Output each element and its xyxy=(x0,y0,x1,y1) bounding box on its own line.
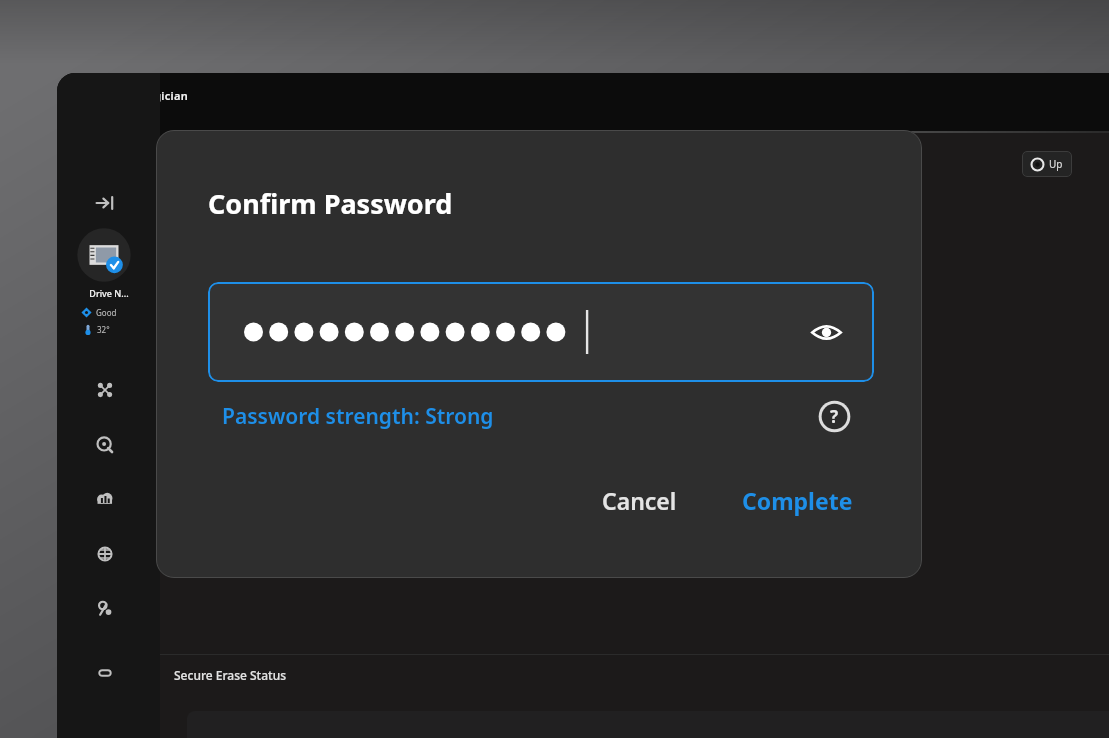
button[interactable]: Data security xyxy=(85,534,125,574)
staticText: Complete xyxy=(742,485,853,516)
button[interactable]: Up xyxy=(1022,151,1072,177)
staticText: 32° xyxy=(97,324,110,335)
staticText: Cancel xyxy=(602,485,677,516)
staticText: Password strength: Strong xyxy=(222,402,494,431)
staticText: Good xyxy=(96,307,117,318)
button[interactable]: Cancel xyxy=(586,477,693,524)
button[interactable]: Performance xyxy=(85,370,125,410)
button[interactable]: Expand menu xyxy=(85,183,125,223)
staticText: Secure Erase Status xyxy=(174,667,286,683)
button[interactable]: Show password xyxy=(806,312,846,352)
button[interactable]: Settings xyxy=(85,653,125,693)
staticText: Up xyxy=(1049,157,1063,171)
staticText: Drive N... xyxy=(76,287,142,299)
button[interactable]: Help xyxy=(816,398,852,434)
button[interactable]: Performance benchmark xyxy=(85,479,125,519)
button[interactable]: Show password xyxy=(208,282,874,382)
staticText: SAMSUNG Magician xyxy=(77,88,189,103)
button[interactable]: Diagnostics xyxy=(85,425,125,465)
button[interactable]: Over provisioning xyxy=(85,589,125,629)
staticText: ? xyxy=(830,405,839,428)
button[interactable]: Complete xyxy=(726,477,869,524)
button[interactable]: Drive xyxy=(75,226,133,284)
staticText: Confirm Password xyxy=(208,185,453,222)
